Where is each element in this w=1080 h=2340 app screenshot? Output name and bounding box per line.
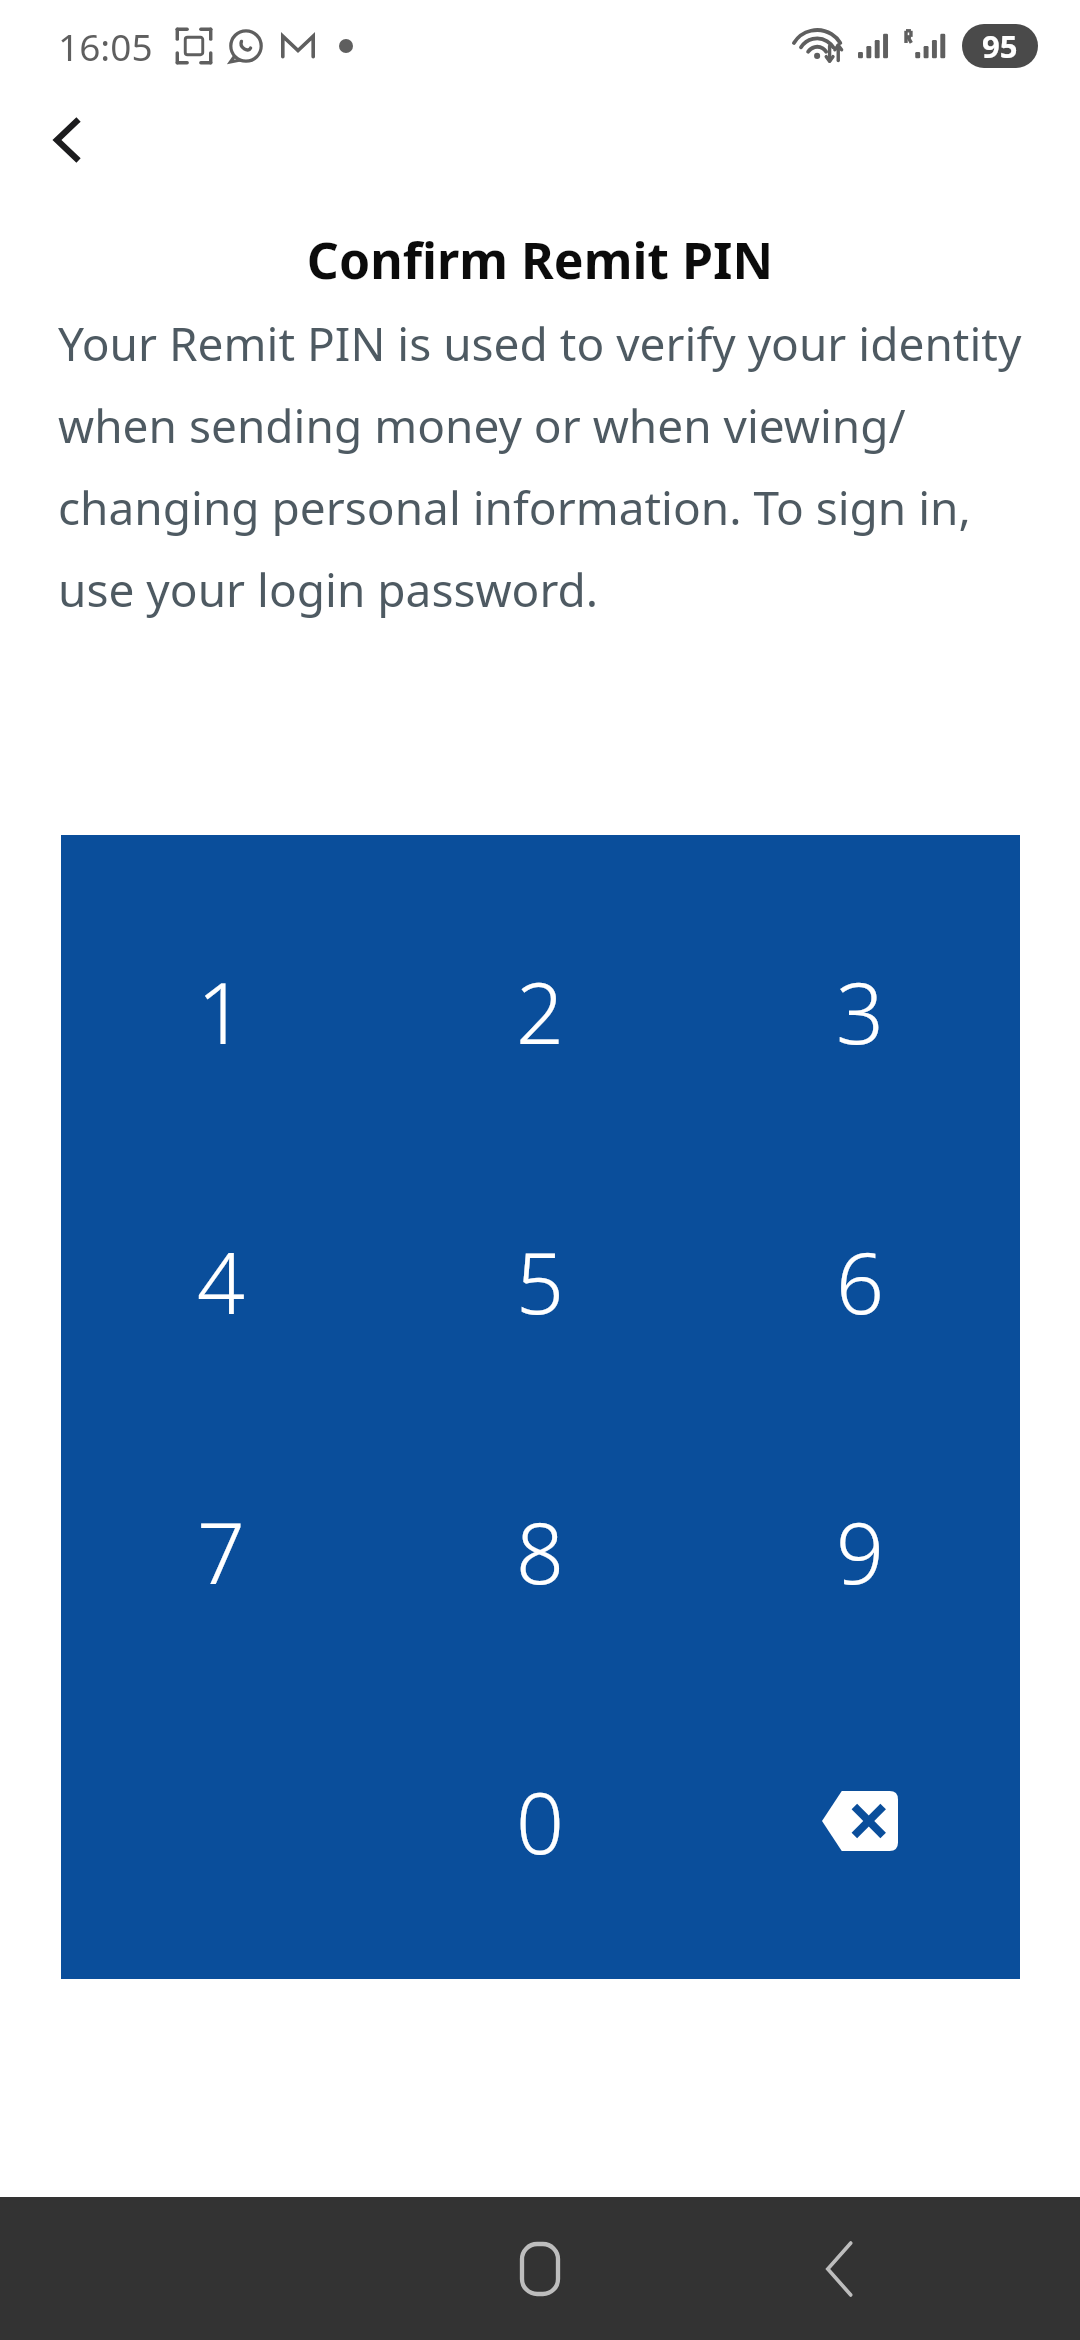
button[interactable]: Back (26, 98, 110, 182)
button[interactable]: 6 (700, 1146, 1020, 1416)
staticText: 0 (516, 1764, 564, 1878)
button[interactable]: 1 (61, 876, 380, 1146)
button[interactable]: 3 (700, 876, 1020, 1146)
staticText: 3 (836, 954, 884, 1068)
button[interactable]: 7 (61, 1416, 380, 1686)
button[interactable]: 4 (61, 1146, 380, 1416)
button[interactable]: 9 (700, 1416, 1020, 1686)
button[interactable]: Delete (700, 1686, 1020, 1956)
button[interactable]: 8 (380, 1416, 700, 1686)
button[interactable]: 5 (380, 1146, 700, 1416)
staticText: 8 (516, 1494, 564, 1608)
button[interactable]: Back (780, 2209, 900, 2329)
staticText: 7 (197, 1494, 245, 1608)
button[interactable]: 0 (380, 1686, 700, 1956)
staticText: 4 (197, 1224, 245, 1338)
staticText: 95 (982, 25, 1018, 67)
staticText: 9 (836, 1494, 884, 1608)
staticText: Your Remit PIN is used to verify your id… (58, 312, 1032, 621)
staticText: 2 (516, 954, 564, 1068)
staticText: 16:05 (58, 21, 153, 71)
button[interactable]: 2 (380, 876, 700, 1146)
staticText: 6 (836, 1224, 884, 1338)
staticText: 1 (197, 954, 245, 1068)
staticText: 5 (516, 1224, 564, 1338)
button[interactable]: Home (480, 2209, 600, 2329)
staticText: Confirm Remit PIN (0, 226, 1080, 294)
